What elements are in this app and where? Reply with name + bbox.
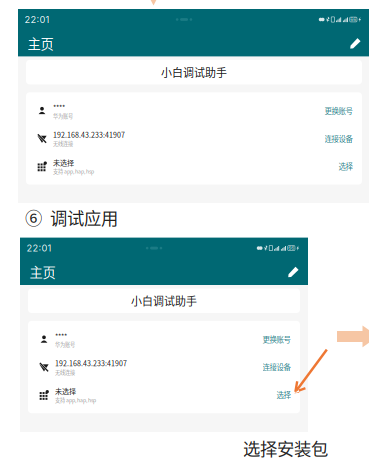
button[interactable]: 未选择 [26, 152, 362, 180]
staticText: 更换账号 [324, 105, 352, 116]
button[interactable]: Edit [286, 264, 301, 279]
staticText: 192.168.43.233:41907 [55, 358, 127, 368]
staticText: 22:01 [26, 242, 51, 254]
staticText: 主页 [29, 262, 55, 281]
staticText: 选择 [276, 389, 290, 400]
staticText: 支持 app, hap, hsp [55, 396, 96, 404]
staticText: 选择 [338, 161, 352, 171]
button[interactable]: 未选择 [28, 381, 300, 409]
staticText: 华为账号 [53, 112, 73, 120]
staticText: 未选择 [55, 386, 76, 396]
staticText: 连接设备 [324, 133, 352, 144]
staticText: 66 [350, 17, 356, 22]
staticText: 支持 app, hap, hsp [53, 167, 94, 175]
staticText: 无线连接 [55, 368, 75, 376]
staticText: 192.168.43.233:41907 [53, 130, 125, 140]
staticText: 66 [288, 245, 294, 251]
staticText: 小白调试助手 [161, 64, 227, 80]
staticText: 华为账号 [55, 341, 75, 348]
staticText: **** [53, 102, 65, 112]
staticText: 更换账号 [262, 334, 290, 345]
staticText: ⑥ 调试应用 [25, 205, 118, 230]
button[interactable]: 192.168.43.233:41907 [26, 125, 362, 152]
staticText: 主页 [27, 33, 53, 53]
button[interactable]: **** [28, 325, 300, 353]
staticText: 22:01 [24, 14, 49, 25]
button[interactable]: 192.168.43.233:41907 [28, 353, 300, 381]
staticText: 无线连接 [53, 140, 73, 147]
staticText: 连接设备 [262, 362, 290, 372]
staticText: 未选择 [53, 157, 74, 167]
button[interactable]: **** [26, 97, 362, 125]
staticText: 选择安装包 [243, 435, 328, 461]
staticText: 小白调试助手 [131, 293, 197, 309]
staticText: **** [55, 330, 67, 341]
button[interactable]: Edit [348, 36, 363, 51]
